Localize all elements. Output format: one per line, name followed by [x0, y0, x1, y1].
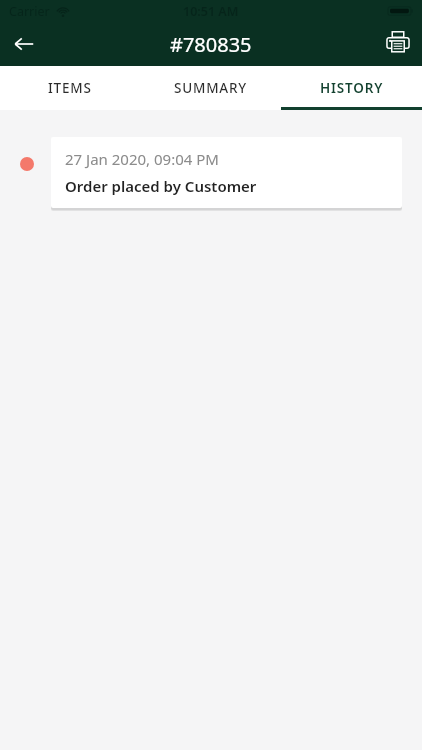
staticText: 27 Jan 2020, 09:04 PM [65, 149, 219, 169]
button[interactable]: Print [374, 22, 422, 66]
staticText: #780835 [170, 31, 252, 58]
button[interactable]: SUMMARY [140, 66, 281, 110]
button[interactable]: 27 Jan 2020, 09:04 PM [51, 137, 402, 208]
staticText: SUMMARY [174, 79, 248, 97]
button[interactable]: ITEMS [0, 66, 140, 110]
staticText: Carrier [9, 3, 50, 20]
staticText: Order placed by Customer [65, 176, 257, 196]
button[interactable]: Back [0, 22, 48, 66]
staticText: 10:51 AM [183, 3, 239, 20]
staticText: ITEMS [48, 79, 92, 97]
staticText: HISTORY [320, 79, 384, 97]
button[interactable]: HISTORY [281, 66, 422, 110]
